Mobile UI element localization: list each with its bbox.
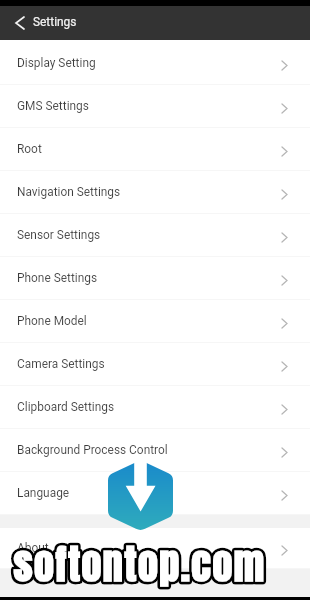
staticText: softontop.com [13, 534, 266, 594]
staticText: Phone Model [17, 314, 87, 328]
button[interactable]: Navigation Settings [0, 171, 310, 213]
button[interactable]: Phone Model [0, 300, 310, 342]
staticText: Language [17, 486, 70, 500]
staticText: GMS Settings [17, 99, 89, 113]
staticText: About [17, 541, 49, 555]
button[interactable]: GMS Settings [0, 85, 310, 127]
button[interactable]: Back [0, 6, 33, 40]
button[interactable]: Display Setting [0, 42, 310, 84]
staticText: Clipboard Settings [17, 400, 115, 414]
button[interactable]: Background Process Control [0, 429, 310, 471]
staticText: Display Setting [17, 56, 96, 70]
staticText: Sensor Settings [17, 228, 101, 242]
button[interactable]: Camera Settings [0, 343, 310, 385]
staticText: Camera Settings [17, 357, 105, 371]
staticText: Phone Settings [17, 271, 98, 285]
button[interactable]: Sensor Settings [0, 214, 310, 256]
button[interactable]: Language [0, 472, 310, 514]
staticText: Settings [33, 15, 77, 29]
button[interactable]: About [0, 528, 310, 568]
button[interactable]: Phone Settings [0, 257, 310, 299]
staticText: Navigation Settings [17, 185, 121, 199]
staticText: Root [17, 142, 42, 156]
button[interactable]: Clipboard Settings [0, 386, 310, 428]
button[interactable]: Root [0, 128, 310, 170]
staticText: Background Process Control [17, 443, 168, 457]
staticText: softontop.com [13, 534, 266, 594]
